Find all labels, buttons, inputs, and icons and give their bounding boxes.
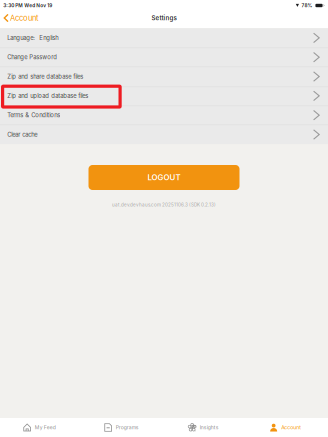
button[interactable]: Account <box>246 418 328 437</box>
staticText: Change Password <box>7 54 57 61</box>
staticText: Account <box>281 424 301 430</box>
staticText: 78% <box>301 3 312 8</box>
button[interactable]: Change Password <box>0 47 328 67</box>
staticText: uat.dev.devhaus.com 20251106.3 (SDK 0.2.… <box>112 202 216 208</box>
staticText: My Feed <box>35 424 56 430</box>
staticText: 3:30 PM Wed Nov 19 <box>3 3 52 8</box>
staticText: Insights <box>200 424 219 430</box>
staticText: Clear cache <box>7 131 37 138</box>
button[interactable]: Insights <box>164 418 246 437</box>
staticText: Programs <box>116 424 139 430</box>
staticText: Zip and upload database files <box>7 92 88 99</box>
button[interactable]: Terms & Conditions <box>0 105 328 125</box>
staticText: Account <box>10 13 38 23</box>
staticText: Settings <box>151 14 176 22</box>
button[interactable]: Language: English <box>0 28 328 47</box>
button[interactable]: Programs <box>82 418 164 437</box>
button[interactable]: Zip and share database files <box>0 67 328 86</box>
staticText: LOGOUT <box>147 173 180 182</box>
staticText: Language: English <box>7 34 58 41</box>
button[interactable]: Zip and upload database files <box>0 86 328 105</box>
button[interactable]: LOGOUT <box>88 165 239 190</box>
button[interactable]: Clear cache <box>0 125 328 144</box>
button[interactable]: Account <box>0 11 42 28</box>
staticText: Zip and share database files <box>7 73 83 80</box>
staticText: Terms & Conditions <box>7 112 60 119</box>
button[interactable]: My Feed <box>0 418 82 437</box>
